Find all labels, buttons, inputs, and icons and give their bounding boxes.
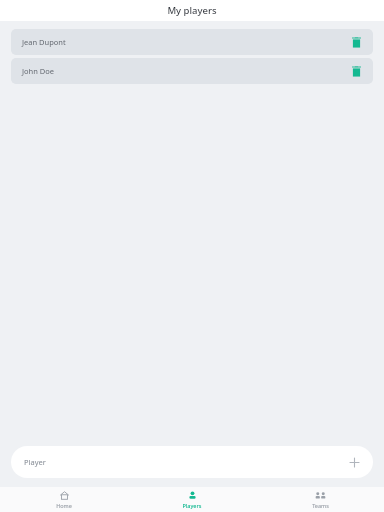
button[interactable]: Player (11, 446, 373, 478)
button[interactable]: Delete Jean Dupont (349, 35, 363, 49)
button[interactable]: Teams (256, 487, 384, 512)
staticText: Teams (312, 502, 329, 509)
button[interactable]: Players (128, 487, 256, 512)
button[interactable]: Add player (347, 455, 361, 469)
button[interactable]: John Doe (11, 58, 373, 84)
button[interactable]: Jean Dupont (11, 29, 373, 55)
staticText: Players (182, 502, 202, 509)
staticText: Home (56, 502, 72, 509)
staticText: Player (24, 457, 46, 467)
staticText: My players (167, 4, 217, 17)
button[interactable]: Home (0, 487, 128, 512)
staticText: John Doe (22, 66, 55, 76)
staticText: Jean Dupont (22, 37, 66, 47)
button[interactable]: Delete John Doe (349, 64, 363, 78)
